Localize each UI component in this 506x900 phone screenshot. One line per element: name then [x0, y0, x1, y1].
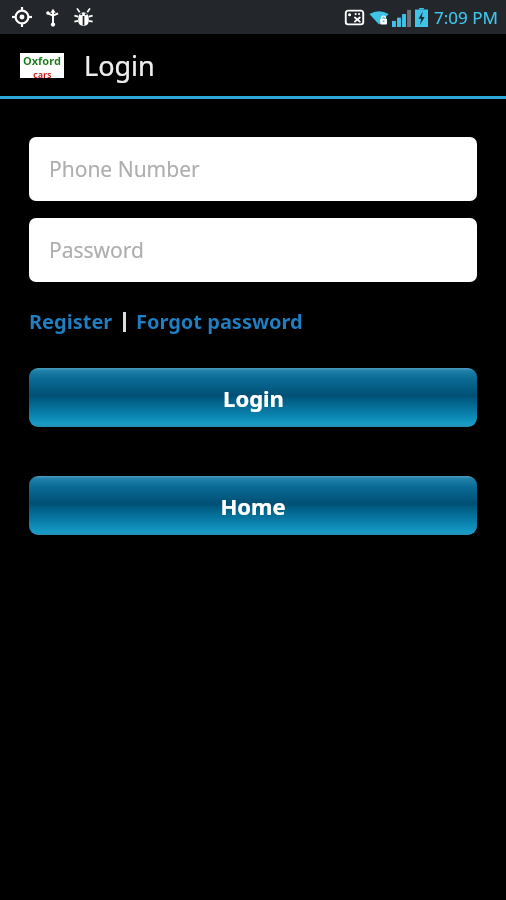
- staticText: Register: [29, 308, 113, 335]
- staticText: Phone Number: [49, 155, 200, 184]
- button[interactable]: Forgot password: [136, 304, 303, 339]
- staticText: 7:09 PM: [434, 6, 498, 29]
- button[interactable]: Home: [29, 476, 477, 535]
- button[interactable]: Register: [29, 304, 113, 339]
- staticText: Login: [223, 383, 284, 413]
- staticText: Oxford: [23, 53, 61, 68]
- staticText: Password: [49, 236, 144, 265]
- staticText: Home: [220, 491, 286, 521]
- button[interactable]: Password: [29, 218, 477, 282]
- staticText: Forgot password: [136, 308, 303, 335]
- button[interactable]: Login: [29, 368, 477, 427]
- staticText: cars: [33, 68, 52, 78]
- button[interactable]: Phone Number: [29, 137, 477, 201]
- staticText: Login: [84, 47, 155, 84]
